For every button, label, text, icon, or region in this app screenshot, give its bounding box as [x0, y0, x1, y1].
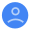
button[interactable]: Account — [0, 0, 32, 32]
